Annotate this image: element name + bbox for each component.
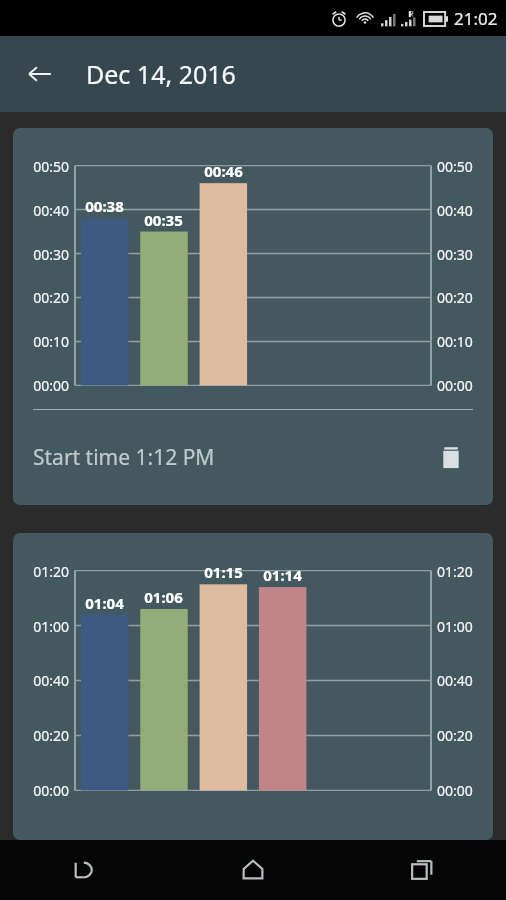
staticText: 01:15 <box>194 562 253 582</box>
staticText: 00:20 <box>437 726 473 745</box>
button[interactable]: Back <box>18 52 62 96</box>
staticText: 00:50 <box>437 157 473 176</box>
staticText: 00:00 <box>437 781 473 800</box>
button[interactable]: Back <box>0 840 168 900</box>
staticText: 01:00 <box>437 617 473 636</box>
staticText: 00:40 <box>13 201 69 220</box>
staticText: Dec 14, 2016 <box>86 57 236 91</box>
button[interactable]: 01:20 <box>13 533 493 840</box>
button[interactable]: Delete <box>429 436 473 480</box>
staticText: 01:20 <box>437 562 473 581</box>
staticText: 00:35 <box>134 210 193 230</box>
staticText: 00:30 <box>13 245 69 264</box>
staticText: 00:10 <box>13 332 69 351</box>
staticText: 01:14 <box>253 565 312 585</box>
staticText: 01:20 <box>13 562 69 581</box>
staticText: 21:02 <box>454 7 498 30</box>
button[interactable]: Home <box>168 840 337 900</box>
staticText: 00:20 <box>13 288 69 307</box>
staticText: 00:38 <box>75 196 134 216</box>
staticText: 00:20 <box>13 726 69 745</box>
staticText: 01:06 <box>134 587 193 607</box>
button[interactable]: Recents <box>337 840 506 900</box>
staticText: 01:00 <box>13 617 69 636</box>
staticText: 00:10 <box>437 332 473 351</box>
staticText: Start time 1:12 PM <box>33 443 215 472</box>
staticText: 00:40 <box>437 671 473 690</box>
staticText: 00:46 <box>194 161 253 181</box>
staticText: 00:40 <box>437 201 473 220</box>
staticText: 00:20 <box>437 288 473 307</box>
staticText: 00:30 <box>437 245 473 264</box>
staticText: 00:50 <box>13 157 69 176</box>
staticText: 00:40 <box>13 671 69 690</box>
staticText: 01:04 <box>75 593 134 613</box>
staticText: 00:00 <box>13 376 69 395</box>
button[interactable]: 00:50 <box>13 128 493 505</box>
staticText: 00:00 <box>13 781 69 800</box>
staticText: 00:00 <box>437 376 473 395</box>
